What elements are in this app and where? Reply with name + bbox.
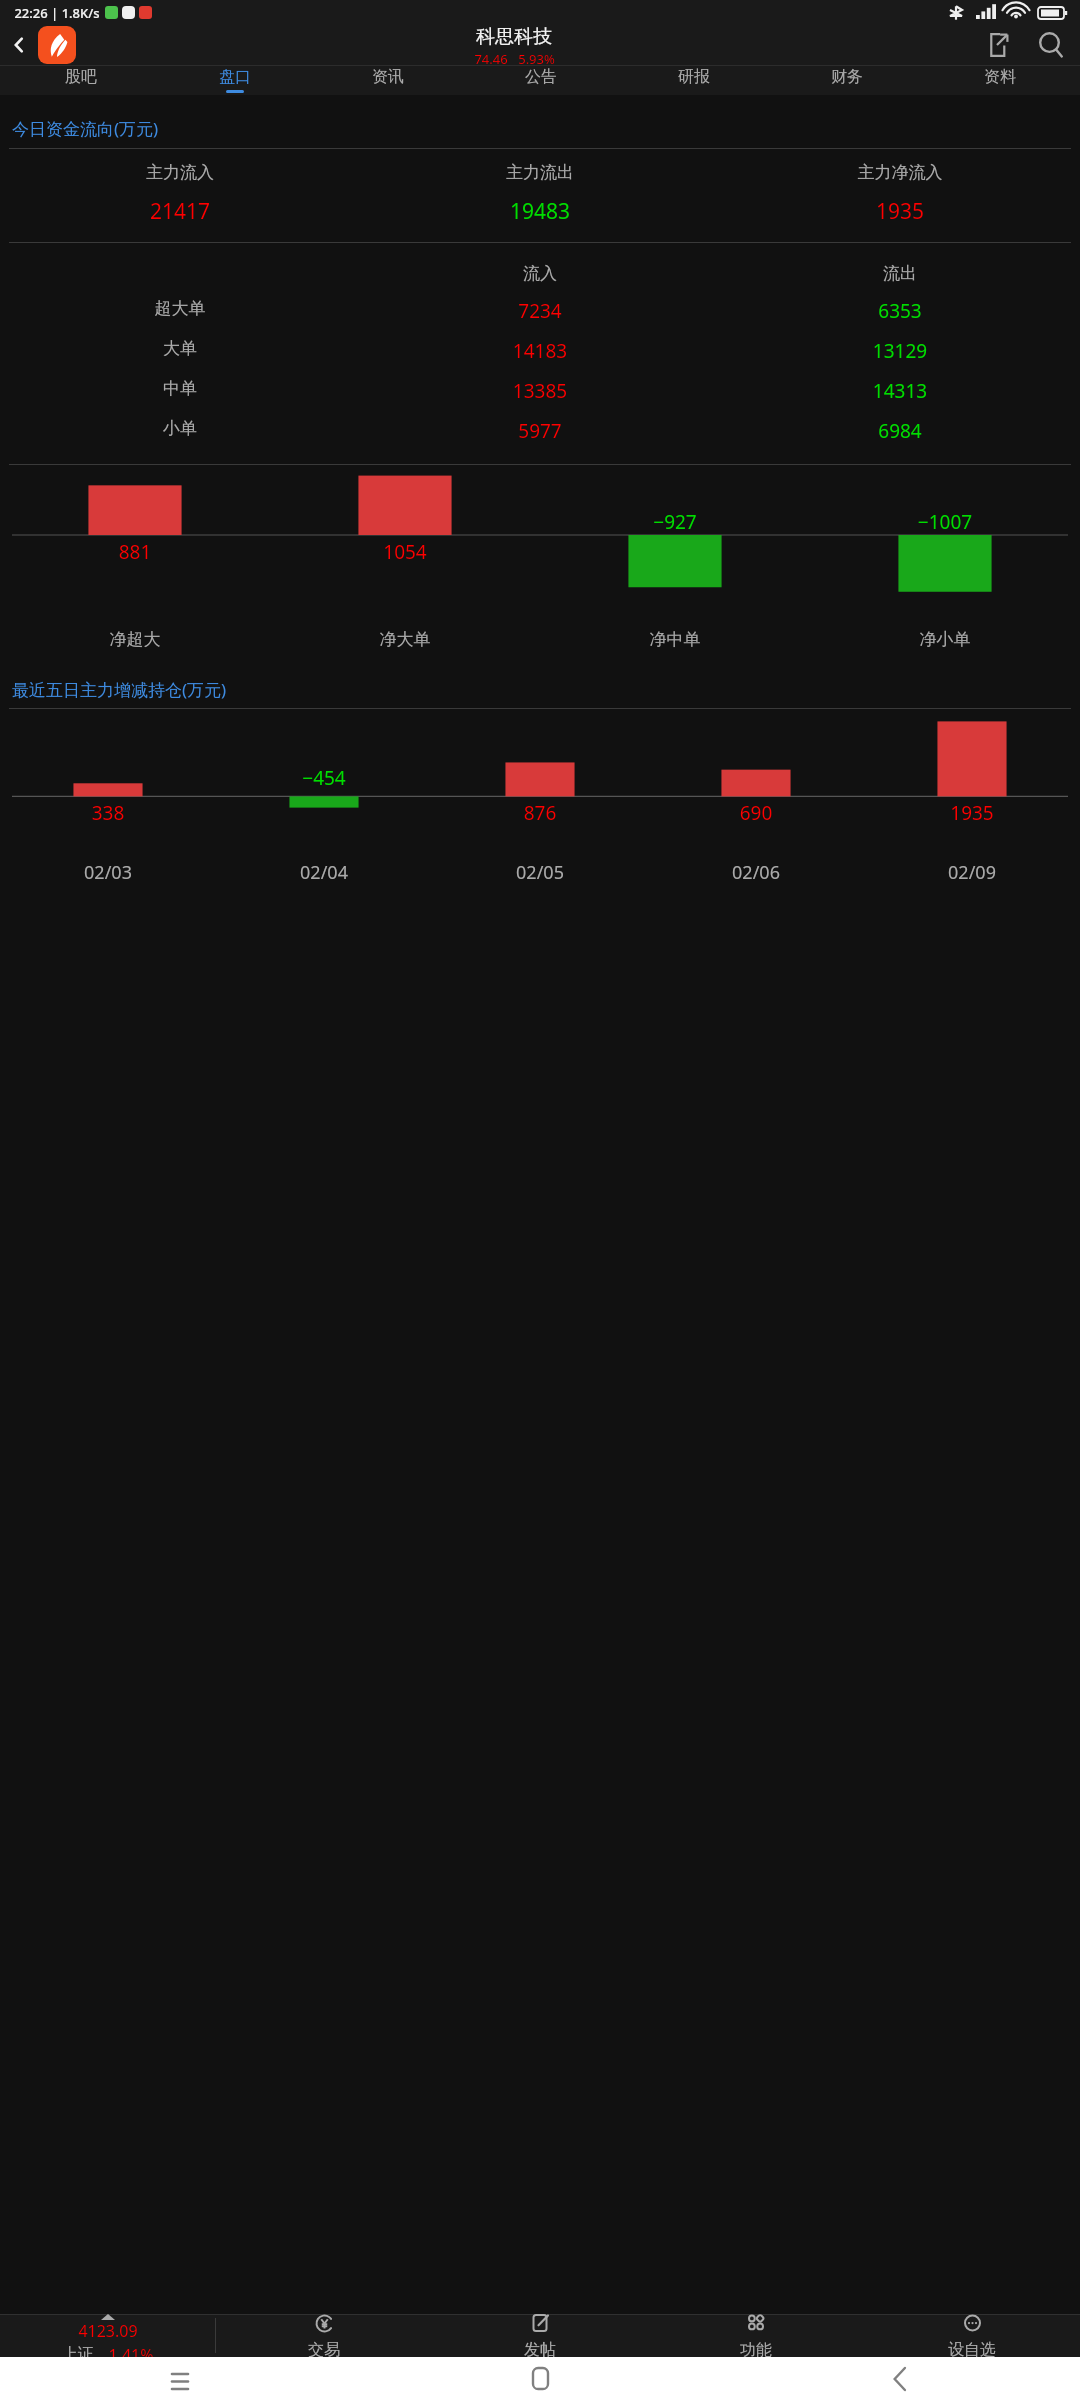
staticText: 主力净流入 — [720, 162, 1080, 183]
staticText: 74.46 — [474, 50, 508, 65]
staticText: 4123.09 — [78, 2320, 138, 2342]
button[interactable]: 发帖 — [432, 2314, 648, 2357]
staticText: 净大单 — [270, 629, 540, 650]
staticText: 13385 — [360, 378, 720, 404]
button[interactable]: 股吧 — [4, 65, 158, 95]
button[interactable]: 返回 — [0, 25, 38, 65]
staticText: 公告 — [525, 67, 557, 87]
staticText: 财务 — [831, 67, 863, 87]
staticText: 净小单 — [810, 629, 1080, 650]
staticText: 今日资金流向(万元) — [12, 117, 1080, 140]
staticText: 股吧 — [65, 67, 97, 87]
staticText: 资讯 — [372, 67, 404, 87]
staticText: 小单 — [0, 418, 360, 439]
staticText: 19483 — [360, 197, 720, 226]
staticText: 1054 — [270, 539, 540, 565]
staticText: 338 — [0, 800, 216, 824]
staticText: 876 — [432, 800, 648, 824]
staticText: 22:26 | 1.8K/s — [14, 4, 100, 22]
button[interactable]: 交易 — [216, 2314, 432, 2357]
staticText: 流入 — [360, 263, 720, 284]
button[interactable]: 4123.09 — [0, 2314, 215, 2357]
staticText: 02/05 — [432, 860, 648, 885]
button[interactable]: 公告 — [464, 65, 617, 95]
button[interactable]: 盘口 — [158, 65, 311, 95]
button[interactable]: 最近任务 — [0, 2357, 360, 2400]
staticText: 净中单 — [540, 629, 810, 650]
staticText: 主力流出 — [360, 162, 720, 183]
staticText: 最近五日主力增减持仓(万元) — [12, 678, 1080, 701]
staticText: 14313 — [720, 378, 1080, 404]
staticText: 净超大 — [0, 629, 270, 650]
staticText: 流出 — [720, 263, 1080, 284]
staticText: 14183 — [360, 338, 720, 364]
button[interactable]: 返回 — [720, 2357, 1080, 2400]
button[interactable]: 功能 — [648, 2314, 864, 2357]
staticText: 5.93% — [518, 50, 555, 65]
staticText: 02/06 — [648, 860, 864, 885]
staticText: 7234 — [360, 298, 720, 324]
staticText: 6353 — [720, 298, 1080, 324]
button[interactable]: 搜索 — [1022, 25, 1080, 65]
staticText: 主力流入 — [0, 162, 360, 183]
staticText: 发帖 — [524, 2340, 556, 2357]
staticText: 上证 — [62, 2344, 94, 2357]
staticText: 大单 — [0, 338, 360, 359]
staticText: 5977 — [360, 418, 720, 444]
staticText: 881 — [0, 539, 270, 565]
staticText: 21417 — [0, 197, 360, 226]
button[interactable]: 分享 — [972, 25, 1022, 65]
staticText: 盘口 — [219, 67, 251, 87]
button[interactable]: 主屏幕 — [360, 2357, 720, 2400]
staticText: 研报 — [678, 67, 710, 87]
staticText: 功能 — [740, 2340, 772, 2357]
staticText: 设自选 — [948, 2340, 996, 2357]
staticText: 1935 — [720, 197, 1080, 226]
staticText: 690 — [648, 800, 864, 824]
button[interactable]: 资讯 — [311, 65, 464, 95]
staticText: 02/03 — [0, 860, 216, 885]
staticText: 资料 — [984, 67, 1016, 87]
staticText: 13129 — [720, 338, 1080, 364]
button[interactable]: 设自选 — [864, 2314, 1080, 2357]
button[interactable]: 东方财富 — [38, 26, 76, 64]
button[interactable]: 财务 — [770, 65, 923, 95]
staticText: 1935 — [864, 800, 1080, 824]
staticText: 中单 — [0, 378, 360, 399]
staticText: −1007 — [810, 509, 1080, 535]
staticText: 交易 — [308, 2340, 340, 2357]
staticText: −454 — [216, 765, 432, 791]
staticText: 02/04 — [216, 860, 432, 885]
button[interactable]: 研报 — [617, 65, 770, 95]
button[interactable]: 资料 — [923, 65, 1076, 95]
staticText: 6984 — [720, 418, 1080, 444]
staticText: 超大单 — [0, 298, 360, 319]
staticText: 1.41% — [108, 2344, 154, 2357]
staticText: 02/09 — [864, 860, 1080, 885]
staticText: 科思科技 — [476, 25, 552, 49]
staticText: −927 — [540, 509, 810, 535]
